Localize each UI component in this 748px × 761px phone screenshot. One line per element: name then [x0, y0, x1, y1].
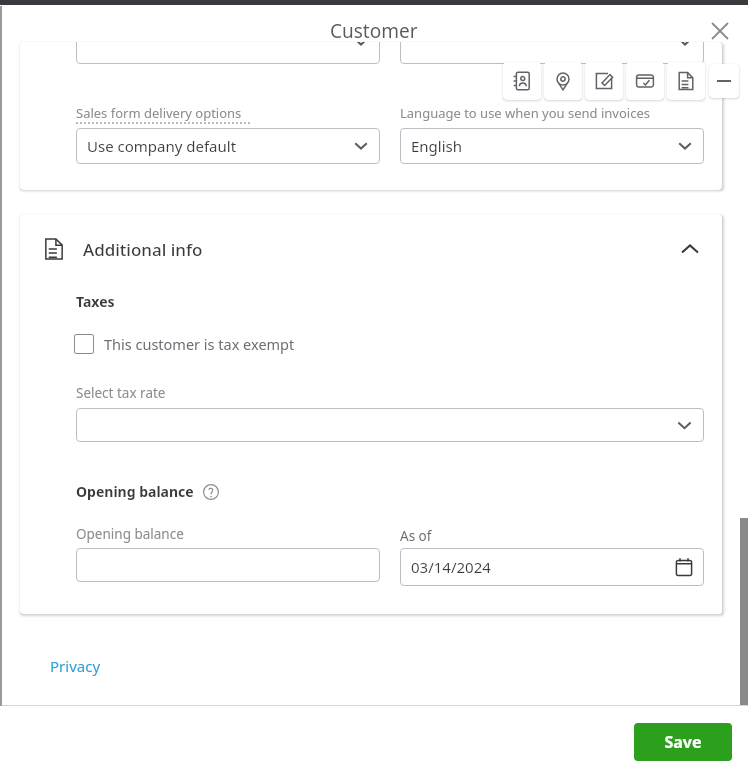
staticText: Use company default	[87, 136, 237, 156]
staticText: Taxes	[76, 292, 115, 311]
staticText: Save	[664, 731, 702, 753]
staticText: This customer is tax exempt	[104, 334, 295, 354]
button[interactable]	[76, 408, 704, 442]
button[interactable]: This customer is tax exempt	[74, 330, 295, 358]
button[interactable]: Edit	[585, 62, 623, 100]
button[interactable]: Location	[544, 62, 582, 100]
button[interactable]: Save	[634, 723, 732, 761]
button[interactable]	[76, 548, 380, 582]
button[interactable]: Close	[702, 13, 738, 49]
staticText: Customer	[330, 18, 418, 44]
button[interactable]: Help about opening balance	[203, 484, 219, 500]
button[interactable]: Privacy	[42, 652, 109, 680]
button[interactable]: Additional info	[20, 214, 722, 284]
staticText: Language to use when you send invoices	[400, 104, 650, 122]
staticText: Select tax rate	[76, 384, 166, 402]
button[interactable]: Collapse toolbar	[709, 64, 739, 98]
staticText: Opening balance	[76, 525, 184, 543]
button[interactable]: Payment	[626, 62, 664, 100]
button[interactable]: English	[400, 128, 704, 164]
staticText: English	[411, 136, 463, 156]
staticText: Sales form delivery options	[76, 104, 242, 122]
button[interactable]: Pick a date	[674, 557, 694, 577]
staticText: Privacy	[50, 656, 101, 676]
staticText: Opening balance	[76, 482, 194, 501]
staticText: 03/14/2024	[411, 557, 491, 577]
staticText: Additional info	[83, 238, 203, 261]
staticText: As of	[400, 527, 432, 545]
button[interactable]: 03/14/2024	[400, 548, 704, 586]
button[interactable]: Contact card	[503, 62, 541, 100]
button[interactable]: Document	[667, 62, 705, 100]
button[interactable]: Use company default	[76, 128, 380, 164]
